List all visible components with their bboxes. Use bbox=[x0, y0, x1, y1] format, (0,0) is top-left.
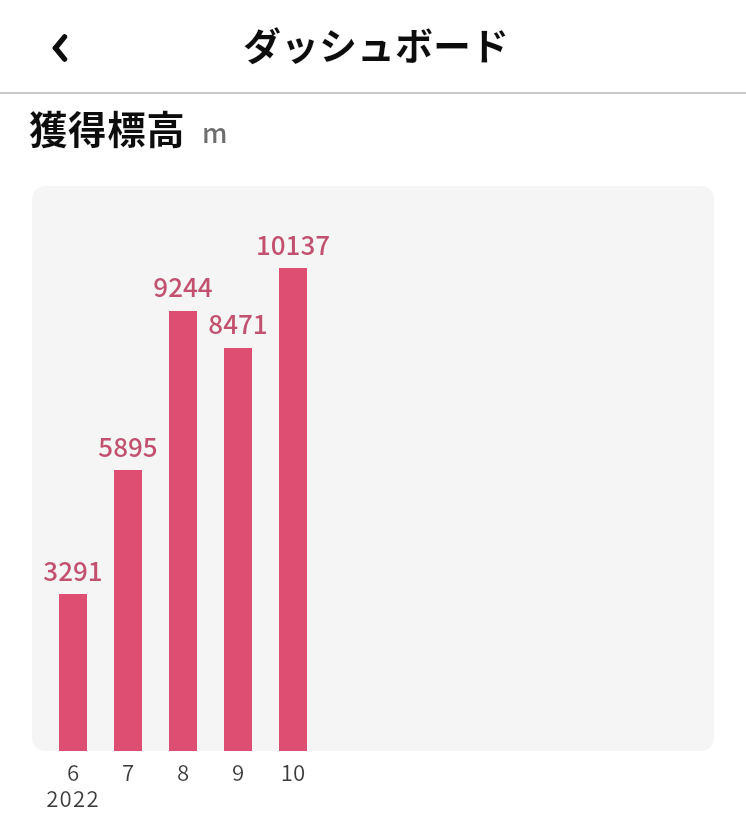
button[interactable]: Back bbox=[38, 26, 82, 70]
staticText: 10 bbox=[233, 755, 353, 787]
staticText: 8471 bbox=[178, 304, 298, 342]
staticText: 3291 bbox=[13, 551, 133, 589]
staticText: 9 bbox=[178, 755, 298, 787]
staticText: ダッシュボード bbox=[243, 16, 510, 71]
staticText: 6 bbox=[13, 755, 133, 787]
staticText: 2022 bbox=[13, 781, 133, 813]
staticText: 5895 bbox=[68, 427, 188, 465]
staticText: m bbox=[202, 112, 228, 151]
staticText: 8 bbox=[123, 755, 243, 787]
staticText: 10137 bbox=[233, 225, 353, 263]
staticText: 9244 bbox=[123, 267, 243, 305]
staticText: 7 bbox=[68, 755, 188, 787]
staticText: 獲得標高 bbox=[29, 99, 186, 155]
